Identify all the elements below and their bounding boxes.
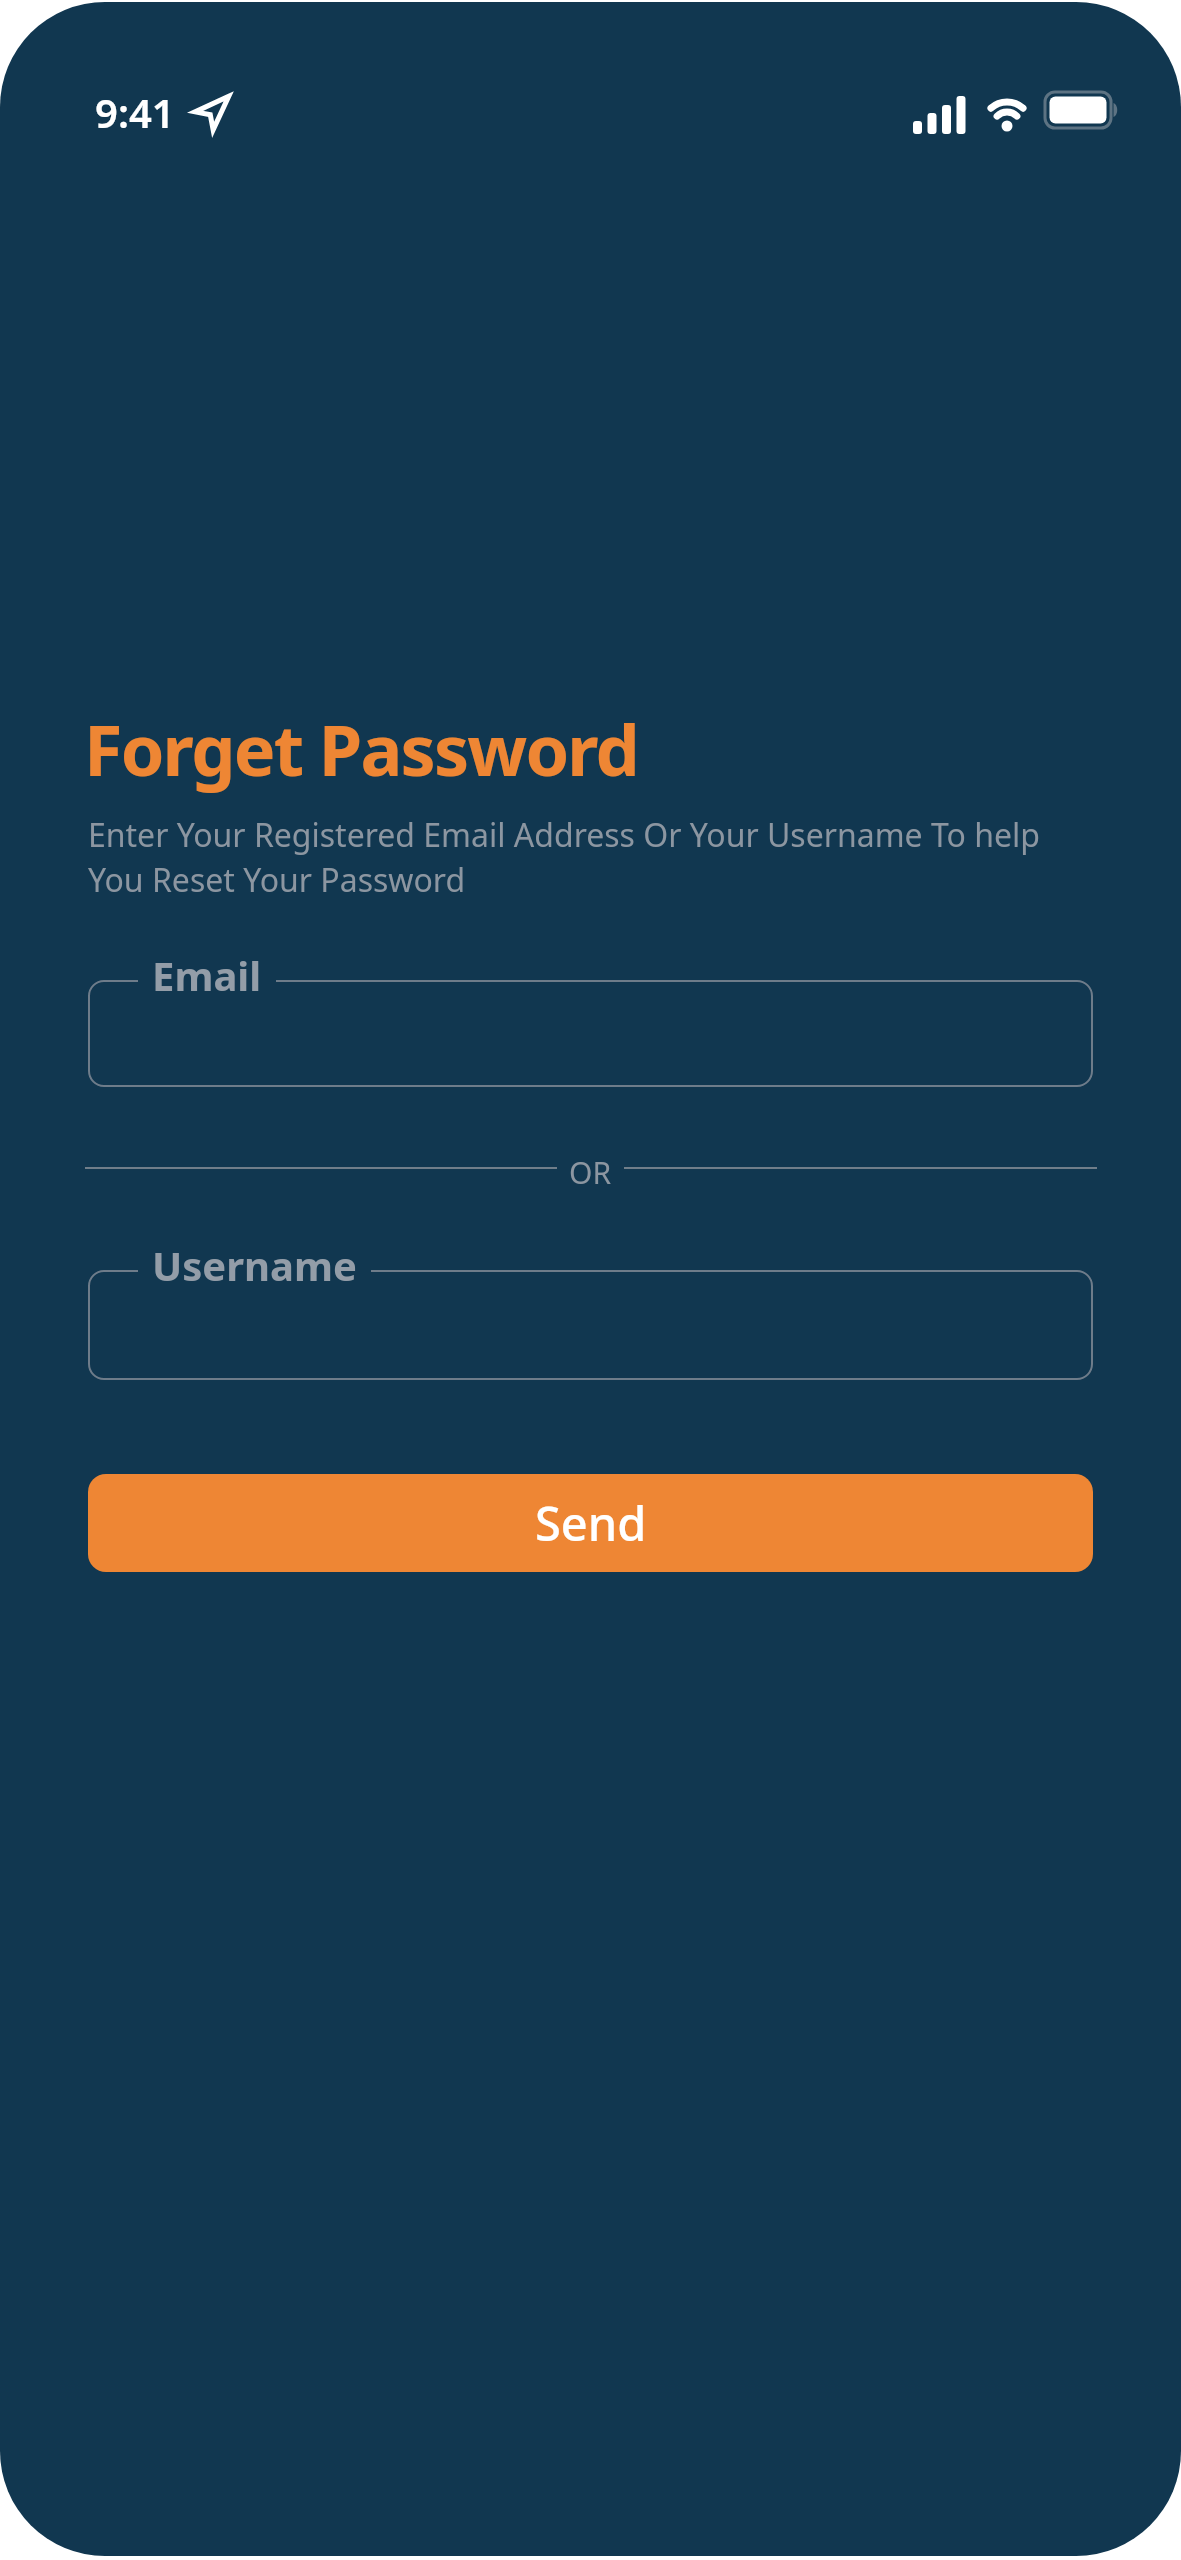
staticText: Send — [535, 1491, 647, 1555]
staticText: Forget Password — [84, 701, 638, 796]
staticText: OR — [569, 1152, 612, 1184]
staticText: Username — [152, 1238, 357, 1292]
staticText: 9:41 — [95, 85, 175, 139]
button[interactable] — [88, 1270, 1093, 1380]
staticText: Email — [152, 948, 262, 1002]
staticText: Enter Your Registered Email Address Or Y… — [88, 813, 1040, 901]
button[interactable] — [88, 980, 1093, 1087]
button[interactable]: Send — [88, 1474, 1093, 1572]
